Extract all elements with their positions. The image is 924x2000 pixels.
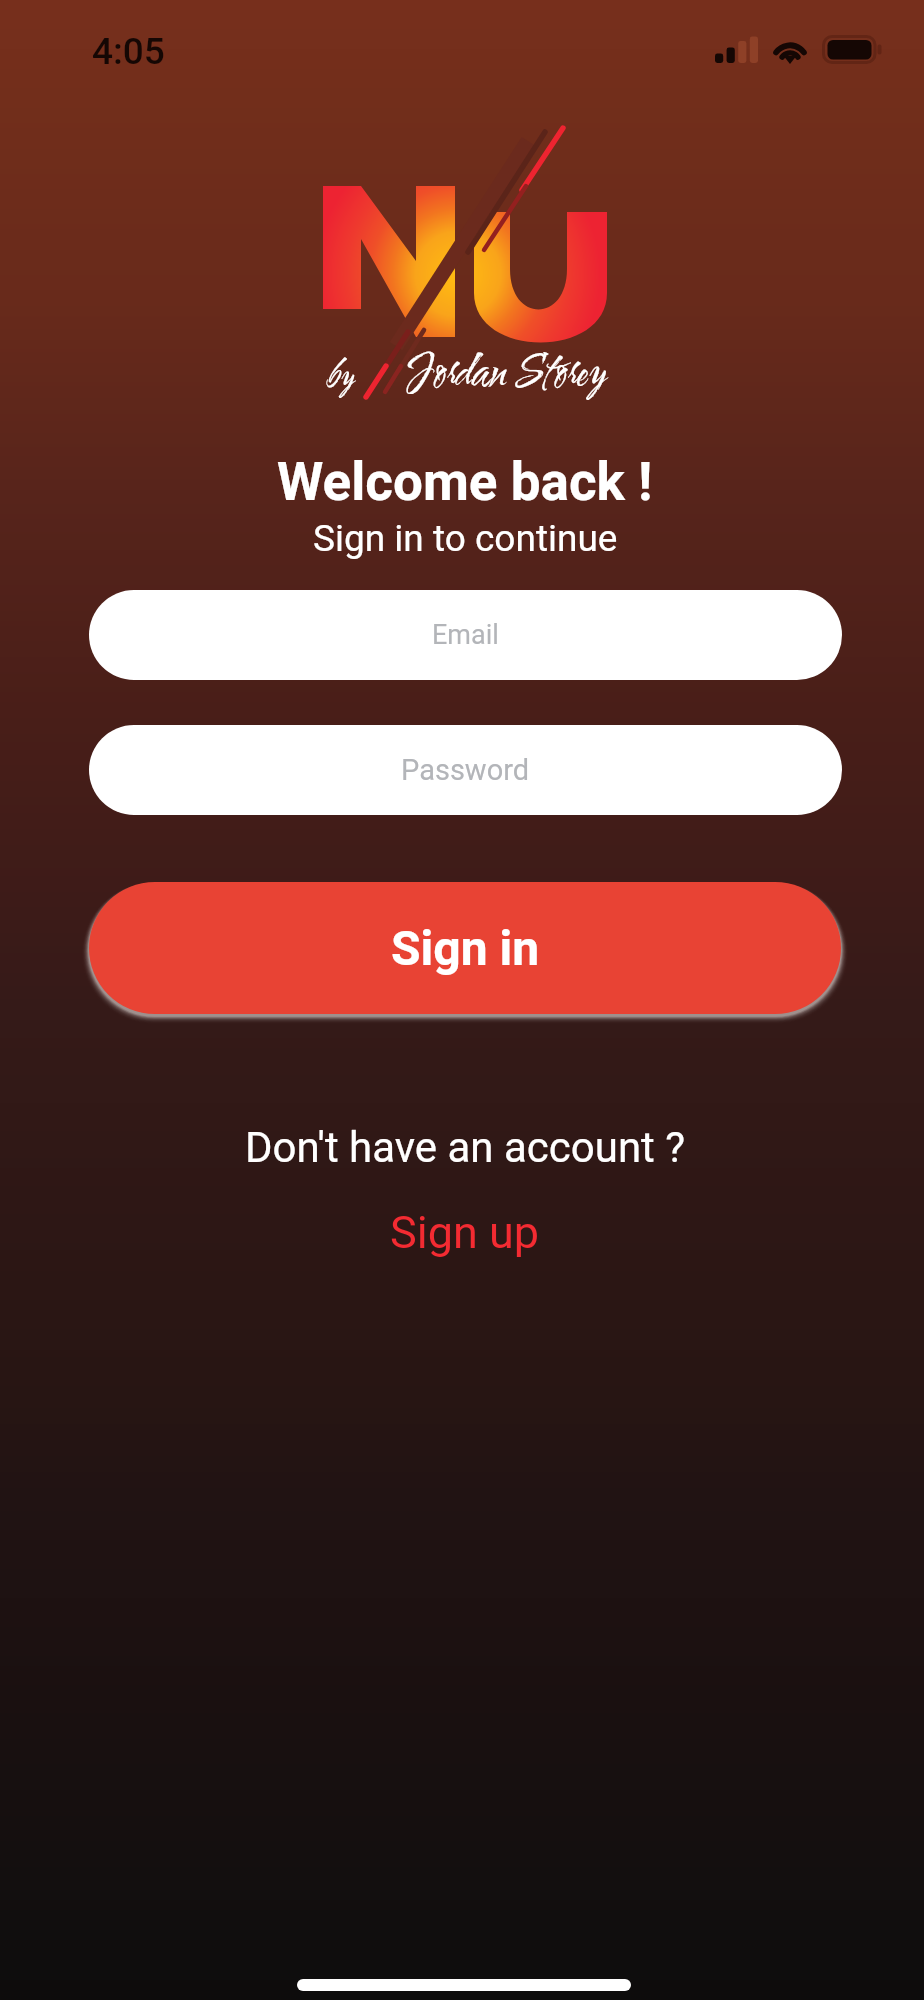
staticText: Sign in [391, 920, 540, 976]
staticText: 4:05 [92, 30, 165, 73]
staticText: by [326, 353, 355, 402]
staticText: Email [432, 619, 499, 651]
staticText: Password [401, 753, 530, 787]
staticText: Don't have an account ? [245, 1123, 686, 1172]
button[interactable]: Email [89, 590, 842, 680]
staticText: Sign in to continue [313, 517, 618, 560]
staticText: Welcome back ! [277, 451, 653, 513]
button[interactable]: Password [89, 725, 842, 815]
button[interactable]: Sign in [89, 882, 841, 1014]
staticText: Sign up [390, 1206, 540, 1259]
button[interactable]: Sign up [372, 1198, 558, 1267]
staticText: Jordan Storey [410, 342, 607, 406]
